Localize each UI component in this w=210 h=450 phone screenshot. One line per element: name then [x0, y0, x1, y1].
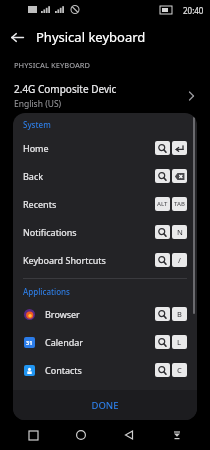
staticText: Physical keyboard	[36, 28, 146, 46]
button[interactable]: Back	[114, 420, 144, 450]
staticText: Keyboard Shortcuts	[23, 254, 106, 266]
button[interactable]: DONE	[13, 390, 197, 420]
staticText: System	[23, 119, 51, 130]
button[interactable]: Notifications	[13, 218, 197, 246]
staticText: 20:40	[183, 5, 204, 16]
button[interactable]: B	[172, 307, 187, 321]
button[interactable]: Contacts	[13, 356, 197, 384]
button[interactable]: search	[155, 169, 170, 183]
staticText: DONE	[91, 399, 119, 412]
button[interactable]: Browser	[13, 300, 197, 328]
staticText: /	[178, 255, 181, 265]
staticText: 2.4G Composite Devic	[14, 82, 117, 96]
staticText: Notifications	[23, 226, 77, 238]
button[interactable]: search	[155, 307, 170, 321]
staticText: Recents	[23, 198, 57, 210]
button[interactable]: /	[172, 253, 187, 267]
staticText: 31	[26, 339, 33, 346]
staticText: PHYSICAL KEYBOARD	[14, 60, 91, 70]
staticText: English (US)	[14, 98, 62, 110]
button[interactable]: Recents	[13, 190, 197, 218]
button[interactable]: 2.4G Composite Devic	[0, 82, 210, 110]
staticText: Home	[23, 142, 49, 154]
staticText: Browser	[45, 308, 80, 320]
staticText: Calendar	[45, 336, 83, 348]
staticText: Contacts	[45, 364, 82, 376]
button[interactable]: Back	[0, 20, 34, 54]
button[interactable]: ALT	[155, 197, 170, 211]
button[interactable]: TAB	[172, 197, 187, 211]
staticText: TAB	[174, 200, 185, 208]
button[interactable]: search	[155, 141, 170, 155]
button[interactable]: Hide keyboard	[162, 420, 192, 450]
button[interactable]: backspace	[172, 169, 187, 183]
staticText: N	[177, 227, 183, 237]
button[interactable]: C	[172, 363, 187, 377]
staticText: Applications	[23, 286, 70, 297]
staticText: L	[177, 337, 182, 347]
button[interactable]: enter	[172, 141, 187, 155]
staticText: C	[177, 365, 182, 375]
button[interactable]: search	[155, 335, 170, 349]
button[interactable]: Home	[13, 134, 197, 162]
staticText: B	[177, 309, 182, 319]
button[interactable]: Recents	[18, 420, 48, 450]
button[interactable]: search	[155, 363, 170, 377]
staticText: Back	[23, 170, 44, 182]
button[interactable]: Back	[13, 162, 197, 190]
button[interactable]: 31	[13, 328, 197, 356]
button[interactable]: Keyboard Shortcuts	[13, 246, 197, 274]
button[interactable]: N	[172, 225, 187, 239]
button[interactable]: search	[155, 253, 170, 267]
button[interactable]: L	[172, 335, 187, 349]
button[interactable]: Home	[66, 420, 96, 450]
button[interactable]: search	[155, 225, 170, 239]
staticText: ALT	[157, 200, 168, 208]
